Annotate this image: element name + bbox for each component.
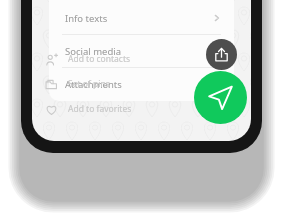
staticText: Add to favorites: [68, 103, 132, 115]
button[interactable]: Attachments: [49, 68, 234, 100]
staticText: Attachments: [65, 78, 122, 91]
button[interactable]: Share: [206, 39, 237, 70]
button[interactable]: Set of pins: [45, 76, 195, 92]
staticText: Set of pins: [68, 78, 110, 90]
button[interactable]: Info texts: [49, 2, 234, 34]
button[interactable]: Social media: [49, 35, 234, 67]
staticText: Info texts: [65, 12, 108, 25]
staticText: Add to contacts: [68, 53, 131, 65]
button[interactable]: Add to favorites: [45, 101, 195, 117]
button[interactable]: Add to contacts: [45, 51, 195, 67]
button[interactable]: Navigate: [194, 71, 247, 124]
staticText: Social media: [65, 45, 122, 58]
